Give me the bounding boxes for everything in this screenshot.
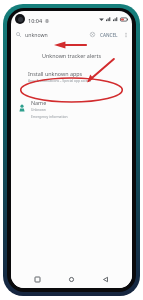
staticText: Unknown tracker alerts	[42, 52, 102, 59]
staticText: Install unknown apps	[28, 70, 83, 77]
button[interactable]: unknown	[25, 31, 88, 38]
button[interactable]: Search	[14, 30, 23, 39]
button[interactable]: Unknown tracker alerts	[11, 50, 132, 61]
button[interactable]: Install unknown apps	[11, 70, 132, 86]
staticText: Name	[31, 99, 47, 106]
staticText: Apps & notifications – Special app acces…	[28, 78, 91, 82]
staticText: Unknown	[31, 107, 46, 111]
button[interactable]: CANCEL	[98, 29, 120, 41]
staticText: 10:04	[28, 17, 43, 24]
button[interactable]: Home	[64, 272, 79, 287]
button[interactable]: More options	[121, 30, 131, 40]
button[interactable]: Clear search	[88, 30, 97, 39]
staticText: unknown	[25, 31, 48, 38]
button[interactable]: Name	[11, 95, 132, 121]
staticText: Emergency information	[31, 114, 68, 118]
staticText: CANCEL	[100, 32, 118, 38]
button[interactable]: Recent apps	[30, 272, 45, 287]
button[interactable]: Back	[98, 272, 113, 287]
